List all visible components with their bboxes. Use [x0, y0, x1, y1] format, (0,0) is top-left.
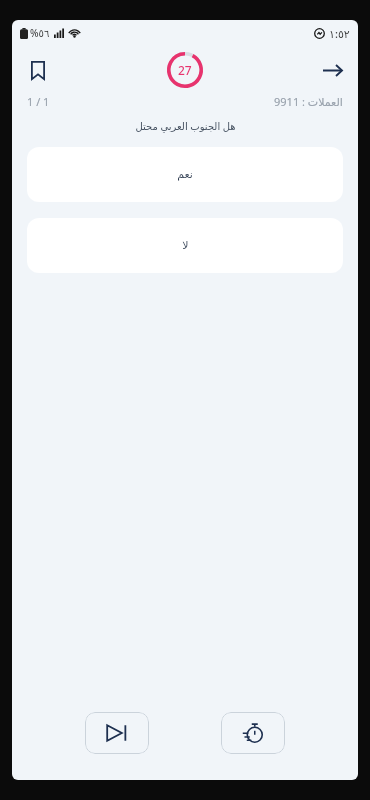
staticText: 1 / 1 — [27, 94, 50, 109]
staticText: نعم — [177, 168, 193, 181]
button[interactable]: لا — [27, 218, 343, 273]
staticText: لا — [182, 239, 189, 252]
button[interactable]: Bookmark — [20, 52, 56, 88]
button[interactable]: Skip next — [85, 712, 149, 754]
button[interactable]: 27 — [165, 50, 205, 90]
staticText: العملات : 9911 — [274, 94, 343, 109]
staticText: %٥٦ — [30, 26, 50, 40]
button[interactable]: نعم — [27, 147, 343, 202]
staticText: ١:٥٢ — [329, 26, 350, 41]
staticText: 27 — [178, 62, 192, 78]
staticText: هل الجنوب العربي محتل — [135, 119, 236, 133]
button[interactable]: Next — [314, 52, 350, 88]
button[interactable]: Timer — [221, 712, 285, 754]
